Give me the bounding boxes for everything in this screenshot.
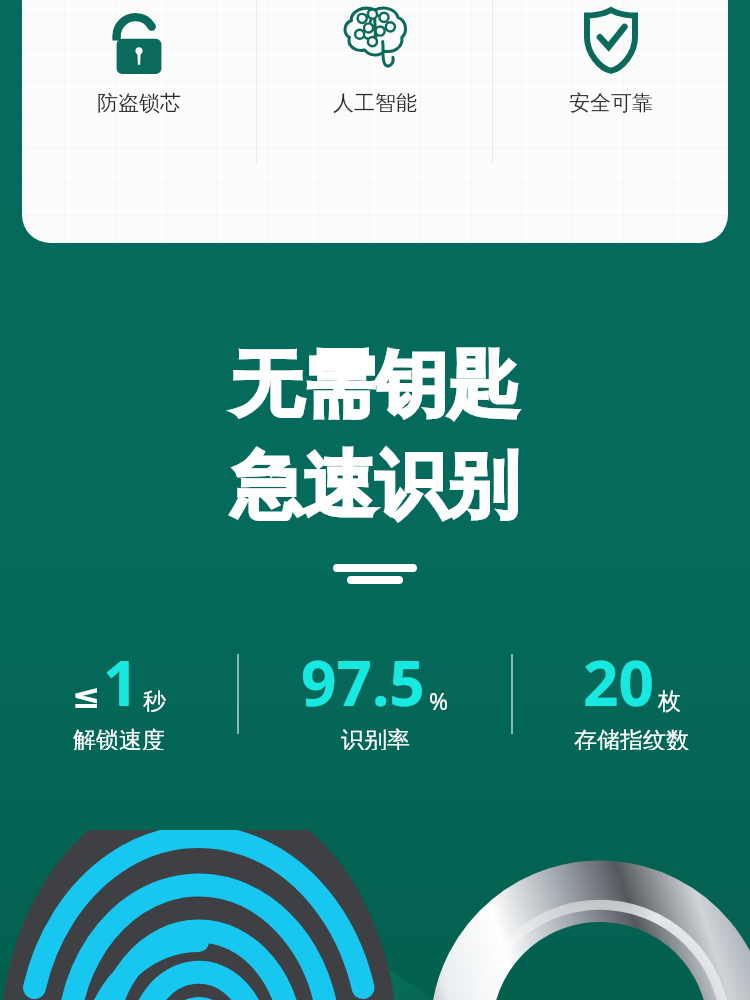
button[interactable]: 20	[513, 640, 750, 750]
staticText: 枚	[658, 687, 681, 716]
staticText: ≤	[72, 676, 101, 716]
staticText: 安全可靠	[569, 90, 653, 116]
button[interactable]: 防盗锁芯	[22, 0, 256, 243]
button[interactable]: ≤	[0, 640, 237, 750]
staticText: 防盗锁芯	[97, 90, 181, 116]
staticText: 人工智能	[333, 90, 417, 116]
staticText: 存储指纹数	[574, 726, 689, 750]
staticText: 急速识别	[231, 441, 519, 532]
staticText: 识别率	[341, 726, 410, 750]
staticText: 1	[103, 640, 139, 724]
button[interactable]: 人工智能	[257, 0, 492, 243]
staticText: %	[429, 685, 449, 716]
button[interactable]: 97.5	[239, 640, 511, 750]
staticText: 解锁速度	[73, 726, 165, 750]
staticText: 无需钥匙	[231, 340, 519, 431]
button[interactable]: 安全可靠	[493, 0, 728, 243]
staticText: 20	[583, 640, 654, 724]
staticText: 秒	[143, 687, 166, 716]
staticText: 97.5	[301, 640, 425, 724]
